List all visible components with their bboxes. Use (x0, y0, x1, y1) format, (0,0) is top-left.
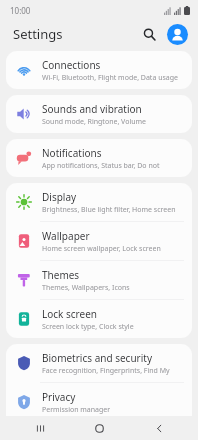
button[interactable]: Sounds and vibration (6, 95, 192, 133)
staticText: Connections (42, 58, 101, 72)
staticText: Settings (13, 25, 63, 43)
staticText: Lock screen (42, 307, 98, 321)
button[interactable]: Display (6, 183, 192, 221)
staticText: App notifications, Status bar, Do not di… (42, 161, 184, 171)
button[interactable]: Location (6, 422, 192, 440)
button[interactable]: Connections (6, 51, 192, 89)
button[interactable]: Wallpaper (6, 222, 192, 260)
button[interactable]: Recent apps (20, 416, 60, 440)
staticText: Screen lock type, Clock style (42, 322, 134, 332)
button[interactable]: Back (139, 416, 179, 440)
staticText: Sounds and vibration (42, 102, 142, 116)
button[interactable]: Home (79, 416, 119, 440)
button[interactable]: Biometrics and security (6, 344, 192, 382)
staticText: Display (42, 190, 77, 204)
staticText: Biometrics and security (42, 351, 152, 365)
staticText: Face recognition, Fingerprints, Find My … (42, 366, 184, 376)
staticText: Notifications (42, 146, 102, 160)
staticText: Wi-Fi, Bluetooth, Flight mode, Data usag… (42, 73, 179, 83)
staticText: Home screen wallpaper, Lock screen wallp… (42, 244, 184, 254)
button[interactable]: Lock screen (6, 300, 192, 338)
staticText: Location (42, 424, 83, 438)
button[interactable]: Search (136, 21, 162, 47)
staticText: Privacy (42, 390, 76, 404)
button[interactable]: Privacy (6, 383, 192, 421)
staticText: Sound mode, Ringtone, Volume (42, 117, 147, 127)
staticText: Permission manager (42, 405, 111, 415)
staticText: 10:00 (10, 5, 31, 16)
staticText: Brightness, Blue light filter, Home scre… (42, 205, 176, 215)
staticText: Themes (42, 268, 80, 282)
staticText: Themes, Wallpapers, Icons (42, 283, 130, 293)
staticText: Wallpaper (42, 229, 90, 243)
button[interactable]: Themes (6, 261, 192, 299)
button[interactable]: Account (164, 21, 190, 47)
button[interactable]: Notifications (6, 139, 192, 177)
